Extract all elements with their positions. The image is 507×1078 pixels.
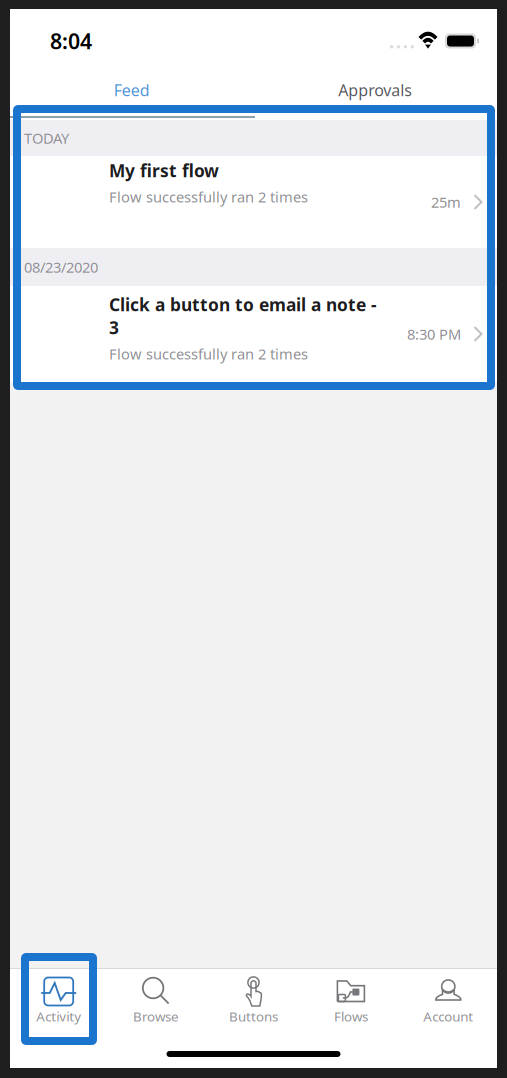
staticText: Flow successfully ran 2 times — [109, 187, 308, 206]
staticText: TODAY — [24, 128, 69, 148]
staticText: Browse — [133, 1007, 179, 1025]
button[interactable]: Flows — [302, 973, 400, 1035]
staticText: Flows — [334, 1007, 368, 1025]
button[interactable]: Buttons — [205, 973, 302, 1035]
staticText: Click a button to email a note - 3 — [109, 293, 377, 339]
staticText: Approvals — [338, 79, 412, 101]
staticText: 08/23/2020 — [24, 257, 98, 277]
staticText: 8:30 PM — [407, 324, 461, 344]
staticText: 8:04 — [50, 27, 92, 55]
button[interactable]: Activity — [10, 973, 107, 1035]
staticText: Flow successfully ran 2 times — [109, 344, 308, 363]
staticText: My first flow — [109, 159, 219, 182]
button[interactable]: My first flow — [10, 156, 497, 248]
button[interactable]: Approvals — [253, 73, 497, 120]
button[interactable]: Browse — [107, 973, 205, 1035]
staticText: Buttons — [229, 1007, 278, 1025]
button[interactable]: Feed — [10, 73, 253, 120]
staticText: Account — [423, 1007, 473, 1025]
staticText: 25m — [431, 192, 461, 212]
staticText: Activity — [36, 1007, 81, 1025]
button[interactable]: Click a button to email a note - 3 — [10, 286, 497, 382]
staticText: Feed — [114, 79, 150, 101]
button[interactable]: Account — [400, 973, 497, 1035]
